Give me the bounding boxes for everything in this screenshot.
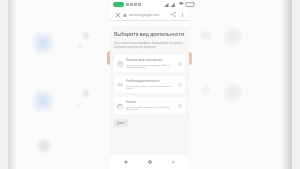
staticText: Для учёбы, курсов и образовательных зада…: [126, 84, 175, 90]
button[interactable]: Подробнее: [177, 61, 182, 66]
button[interactable]: Recent apps: [119, 155, 133, 169]
button[interactable]: Далее: [114, 119, 128, 127]
staticText: Выберите вид деятельности: [114, 31, 185, 38]
button[interactable]: Подробнее: [177, 82, 182, 87]
button[interactable]: Share: [169, 10, 178, 19]
staticText: Это поможет нам подобрать подходящие нас…: [114, 41, 185, 49]
staticText: Учебная деятельность: [126, 79, 160, 83]
button[interactable]: More options: [178, 11, 186, 19]
button[interactable]: Подробнее: [177, 103, 182, 108]
staticText: Личная цель или проект: [126, 58, 163, 62]
staticText: Для личного использования, хобби и собст…: [126, 63, 170, 69]
staticText: Далее: [117, 121, 125, 125]
button[interactable]: Close: [113, 10, 122, 19]
button[interactable]: Бизнес: [114, 97, 185, 114]
button[interactable]: Back: [166, 155, 180, 169]
staticText: account.google.com: [129, 13, 169, 17]
button[interactable]: Личная цель или проект: [114, 55, 185, 72]
button[interactable]: Home: [143, 155, 157, 169]
staticText: Бизнес: [126, 100, 137, 104]
button[interactable]: Учебная деятельность: [114, 76, 185, 93]
staticText: Для компании, команды или рабочих процес…: [126, 105, 175, 111]
